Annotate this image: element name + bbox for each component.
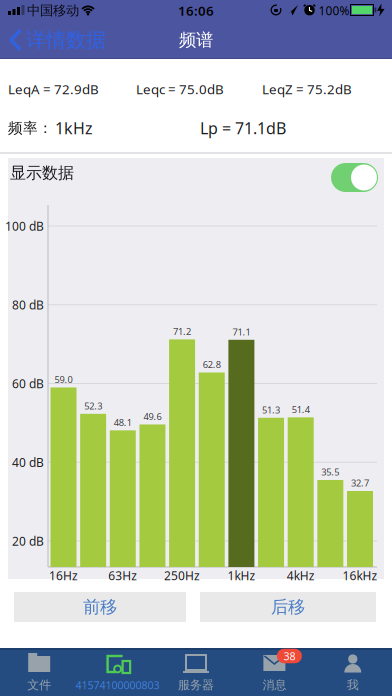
- staticText: 51.3: [262, 404, 280, 416]
- staticText: 后移: [271, 596, 305, 618]
- staticText: LeqZ = 75.2dB: [262, 80, 352, 98]
- button[interactable]: [331, 163, 378, 192]
- staticText: 1kHz: [55, 117, 93, 139]
- staticText: 62.8: [203, 358, 221, 371]
- staticText: 38: [283, 649, 295, 663]
- button[interactable]: 消息: [235, 648, 313, 696]
- staticText: 32.7: [351, 477, 369, 489]
- staticText: 16:06: [178, 2, 214, 19]
- button[interactable]: 41574100000803: [75, 648, 161, 696]
- staticText: 100%: [318, 2, 349, 18]
- staticText: 52.3: [84, 400, 102, 412]
- staticText: 41574100000803: [76, 678, 160, 692]
- staticText: 71.1: [232, 326, 250, 338]
- staticText: 我: [347, 678, 359, 692]
- staticText: 59.0: [54, 373, 72, 386]
- staticText: 100 dB: [5, 218, 44, 234]
- staticText: 250Hz: [164, 567, 200, 583]
- staticText: 35.5: [321, 466, 339, 478]
- button[interactable]: 前移: [14, 592, 186, 622]
- button[interactable]: 我: [314, 648, 392, 696]
- staticText: 71.2: [173, 325, 191, 338]
- staticText: 显示数据: [10, 163, 74, 183]
- staticText: 40 dB: [12, 454, 44, 470]
- button[interactable]: 文件: [0, 648, 78, 696]
- staticText: 49.6: [143, 410, 161, 423]
- button[interactable]: 后移: [200, 592, 376, 622]
- staticText: LeqA = 72.9dB: [8, 80, 99, 98]
- staticText: 文件: [27, 678, 51, 692]
- staticText: 51.4: [292, 403, 310, 416]
- staticText: 16kHz: [342, 567, 377, 583]
- staticText: 1kHz: [227, 567, 255, 583]
- staticText: 16Hz: [49, 567, 78, 583]
- staticText: 频率：: [8, 119, 53, 137]
- staticText: 80 dB: [12, 297, 44, 313]
- staticText: 20 dB: [12, 533, 44, 549]
- staticText: 频谱: [179, 29, 213, 51]
- staticText: 48.1: [114, 416, 132, 429]
- button[interactable]: 服务器: [157, 648, 235, 696]
- staticText: 4kHz: [287, 567, 315, 583]
- button[interactable]: 详情数据: [2, 18, 114, 62]
- staticText: 中国移动: [27, 2, 79, 19]
- staticText: Leqc = 75.0dB: [136, 80, 224, 98]
- staticText: 63Hz: [108, 567, 137, 583]
- staticText: 60 dB: [12, 375, 44, 391]
- staticText: Lp = 71.1dB: [200, 117, 286, 139]
- staticText: 消息: [262, 678, 286, 692]
- staticText: 服务器: [178, 678, 214, 692]
- staticText: 前移: [83, 596, 117, 618]
- staticText: 详情数据: [26, 28, 106, 52]
